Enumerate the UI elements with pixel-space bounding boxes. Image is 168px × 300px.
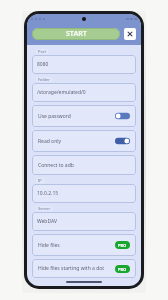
staticText: Port <box>38 49 46 54</box>
button[interactable]: 10.0.2.15 <box>32 178 136 203</box>
staticText: Folder <box>38 77 50 82</box>
button[interactable]: WebDAV <box>32 206 136 231</box>
staticText: /storage/emulated/0 <box>37 89 86 96</box>
button[interactable]: Hide files starting with a dot <box>32 259 136 278</box>
staticText: IP <box>38 178 42 183</box>
staticText: 10.0.2.15 <box>37 190 59 197</box>
button[interactable]: Connect to adb <box>32 155 136 175</box>
staticText: Hide files starting with a dot <box>38 265 111 272</box>
staticText: PRO <box>118 267 127 272</box>
button[interactable]: Use password <box>32 105 136 127</box>
button[interactable]: Read only <box>32 130 136 152</box>
staticText: Server <box>38 206 51 211</box>
button[interactable]: Hide files <box>32 234 136 256</box>
staticText: 8080 <box>37 61 49 68</box>
button[interactable]: Close <box>124 28 136 40</box>
staticText: Read only <box>38 138 111 145</box>
staticText: Hide files <box>38 242 111 249</box>
staticText: Connect to adb <box>38 162 74 169</box>
staticText: WebDAV <box>37 218 57 225</box>
staticText: START <box>66 29 87 39</box>
button[interactable]: /storage/emulated/0 <box>32 77 136 102</box>
button[interactable]: 8080 <box>32 49 136 74</box>
button[interactable]: START <box>32 28 120 40</box>
staticText: Use password <box>38 113 111 120</box>
staticText: PRO <box>118 243 127 248</box>
